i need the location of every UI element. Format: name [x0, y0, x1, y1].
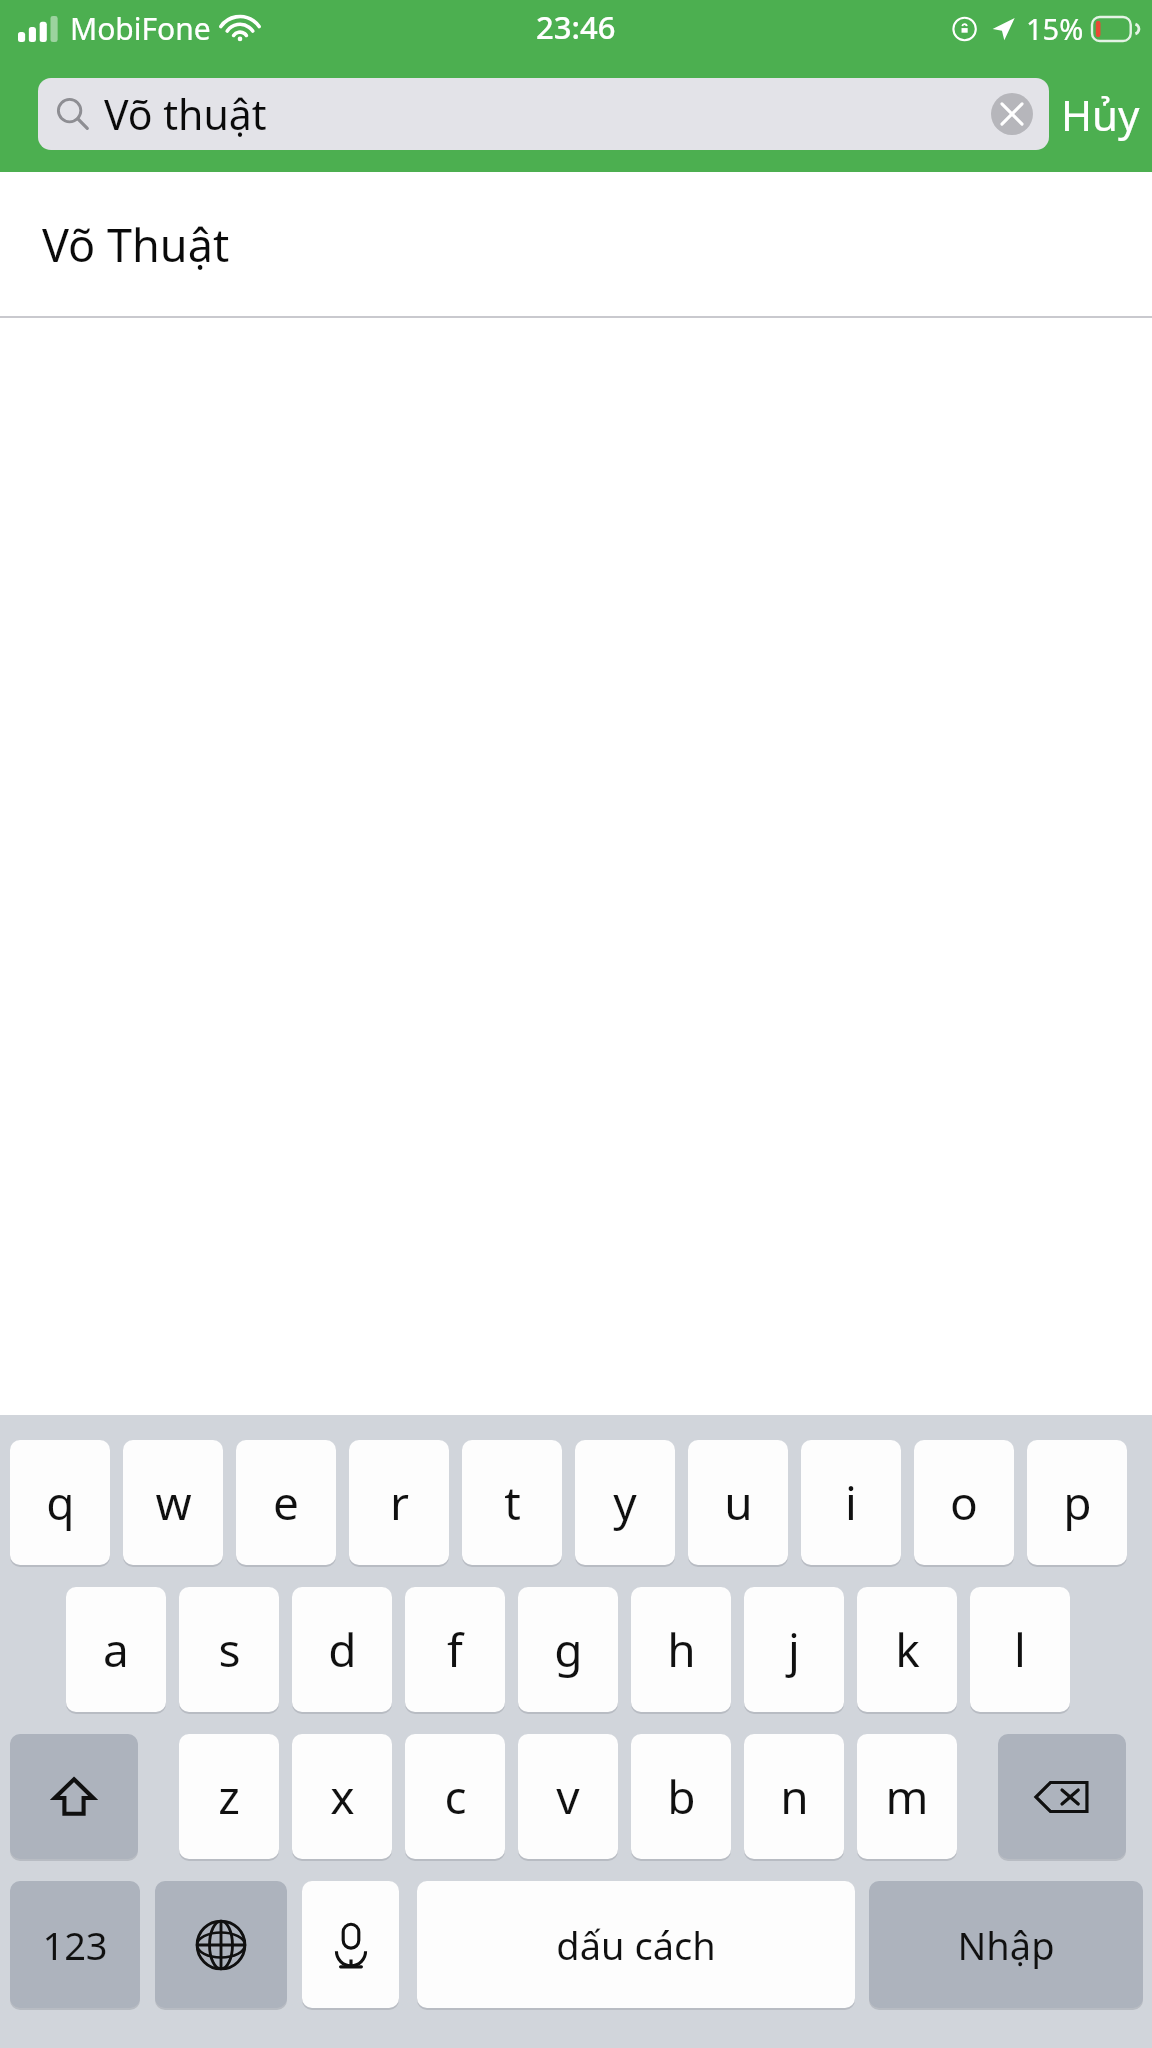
button[interactable]: i — [801, 1440, 901, 1565]
staticText: v — [556, 1765, 580, 1828]
staticText: n — [780, 1765, 809, 1828]
button[interactable]: j — [744, 1587, 844, 1712]
button[interactable]: m — [857, 1734, 957, 1859]
button[interactable]: Nhập — [869, 1881, 1143, 2008]
staticText: Hủy — [1061, 86, 1140, 143]
staticText: j — [788, 1618, 800, 1681]
button[interactable]: u — [688, 1440, 788, 1565]
staticText: l — [1014, 1618, 1026, 1681]
staticText: r — [390, 1471, 409, 1534]
staticText: Nhập — [957, 1919, 1055, 1971]
staticText: Võ thuật — [104, 86, 267, 142]
staticText: o — [950, 1471, 978, 1534]
staticText: s — [218, 1618, 241, 1681]
staticText: t — [504, 1471, 521, 1534]
button[interactable]: s — [179, 1587, 279, 1712]
button[interactable]: l — [970, 1587, 1070, 1712]
staticText: w — [155, 1471, 192, 1534]
button[interactable]: Backspace — [998, 1734, 1126, 1859]
staticText: i — [845, 1471, 857, 1534]
staticText: u — [724, 1471, 753, 1534]
button[interactable]: Voice input — [302, 1881, 399, 2008]
staticText: q — [46, 1471, 75, 1534]
button[interactable]: t — [462, 1440, 562, 1565]
button[interactable]: b — [631, 1734, 731, 1859]
button[interactable]: Hủy — [1061, 74, 1140, 154]
staticText: g — [554, 1618, 583, 1681]
staticText: 23:46 — [536, 6, 616, 48]
staticText: a — [103, 1618, 129, 1681]
staticText: Võ Thuật — [42, 214, 230, 275]
staticText: e — [273, 1471, 299, 1534]
staticText: d — [328, 1618, 357, 1681]
staticText: z — [218, 1765, 240, 1828]
button[interactable]: g — [518, 1587, 618, 1712]
staticText: c — [444, 1765, 467, 1828]
staticText: p — [1063, 1471, 1092, 1534]
button[interactable]: n — [744, 1734, 844, 1859]
button[interactable]: v — [518, 1734, 618, 1859]
staticText: dấu cách — [556, 1919, 716, 1971]
staticText: k — [895, 1618, 920, 1681]
button[interactable]: w — [123, 1440, 223, 1565]
button[interactable]: e — [236, 1440, 336, 1565]
button[interactable]: q — [10, 1440, 110, 1565]
button[interactable]: Shift — [10, 1734, 138, 1859]
button[interactable]: r — [349, 1440, 449, 1565]
button[interactable]: p — [1027, 1440, 1127, 1565]
button[interactable]: Võ thuật — [38, 78, 1049, 150]
button[interactable]: f — [405, 1587, 505, 1712]
staticText: MobiFone — [70, 8, 211, 49]
button[interactable]: d — [292, 1587, 392, 1712]
button[interactable]: c — [405, 1734, 505, 1859]
button[interactable]: h — [631, 1587, 731, 1712]
staticText: f — [447, 1618, 463, 1681]
staticText: 15% — [1026, 9, 1084, 48]
staticText: x — [330, 1765, 355, 1828]
button[interactable]: dấu cách — [417, 1881, 855, 2008]
button[interactable]: Change keyboard language — [155, 1881, 287, 2008]
staticText: m — [885, 1765, 929, 1828]
button[interactable]: Võ Thuật — [0, 172, 1152, 316]
button[interactable]: k — [857, 1587, 957, 1712]
staticText: h — [667, 1618, 696, 1681]
button[interactable]: 123 — [10, 1881, 140, 2008]
button[interactable]: Clear text — [991, 93, 1033, 135]
staticText: b — [667, 1765, 696, 1828]
staticText: y — [613, 1471, 637, 1534]
button[interactable]: y — [575, 1440, 675, 1565]
button[interactable]: a — [66, 1587, 166, 1712]
button[interactable]: z — [179, 1734, 279, 1859]
button[interactable]: o — [914, 1440, 1014, 1565]
button[interactable]: x — [292, 1734, 392, 1859]
staticText: 123 — [42, 1919, 108, 1971]
